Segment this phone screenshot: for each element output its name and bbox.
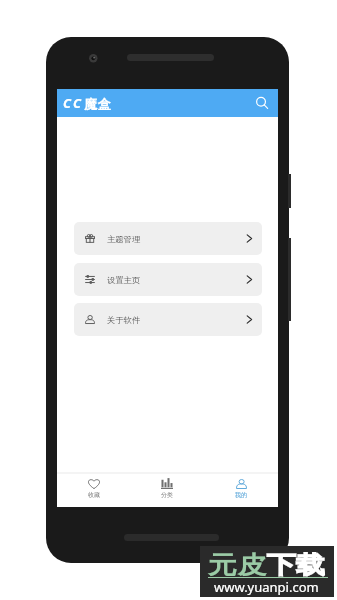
staticText: 关于软件	[107, 315, 141, 325]
staticText: www.yuanpi.com	[214, 578, 319, 596]
button[interactable]: 设置主页	[74, 263, 262, 296]
staticText: 主题管理	[107, 234, 141, 244]
staticText: 我的	[235, 491, 247, 499]
button[interactable]: 分类	[130, 474, 204, 499]
staticText: 魔盒	[84, 96, 112, 112]
staticText: 分类	[161, 491, 173, 499]
staticText: CC	[63, 94, 84, 112]
button[interactable]: 关于软件	[74, 303, 262, 336]
button[interactable]: 我的	[204, 474, 278, 499]
staticText: 收藏	[88, 491, 100, 499]
button[interactable]: 收藏	[57, 474, 130, 499]
staticText: 元皮	[208, 550, 267, 580]
button[interactable]: 主题管理	[74, 222, 262, 255]
staticText: 下载	[267, 550, 325, 580]
staticText: 设置主页	[107, 275, 141, 285]
button[interactable]: Search	[254, 95, 270, 111]
